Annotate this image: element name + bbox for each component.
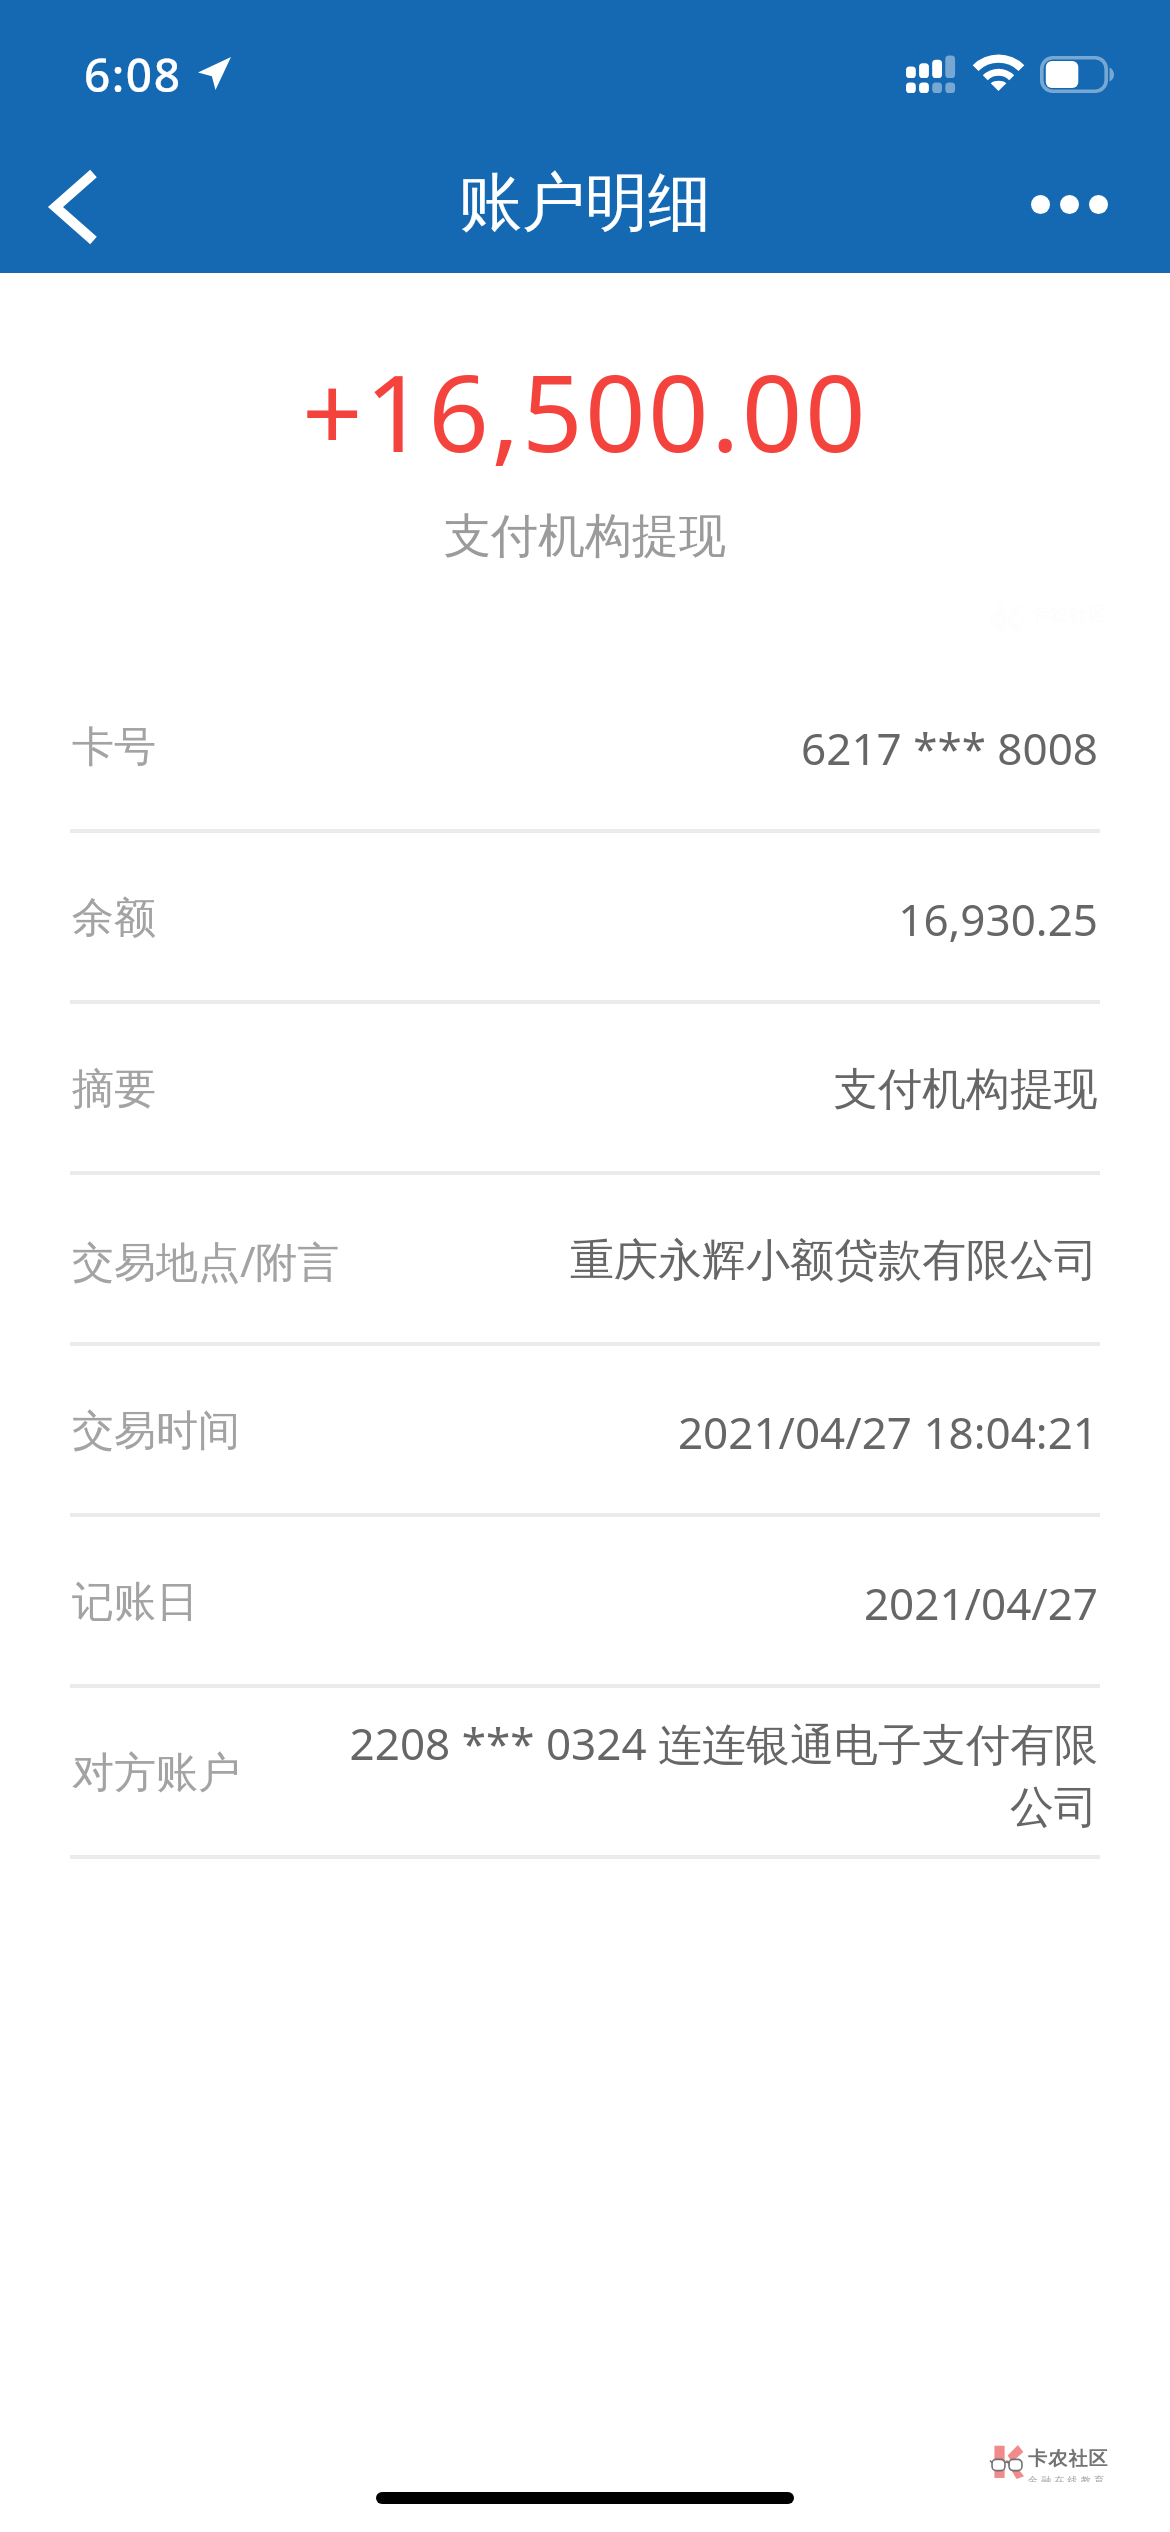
staticText: 记账日 <box>72 1576 198 1629</box>
staticText: 余额 <box>72 892 156 945</box>
staticText: 交易时间 <box>72 1405 240 1458</box>
button[interactable]: Back <box>0 125 145 273</box>
button[interactable]: 卡号 <box>0 662 1170 833</box>
staticText: 2021/04/27 18:04:21 <box>340 1402 1098 1462</box>
staticText: +16,500.00 <box>0 339 1170 483</box>
staticText: 2021/04/27 <box>298 1573 1098 1633</box>
button[interactable]: 记账日 <box>0 1517 1170 1688</box>
staticText: 摘要 <box>72 1063 156 1116</box>
staticText: 对方账户 <box>72 1747 240 1800</box>
staticText: 卡号 <box>72 721 156 774</box>
staticText: 6217 *** 8008 <box>256 718 1098 778</box>
button[interactable]: More options <box>1020 125 1170 273</box>
staticText: 卡农社区 <box>1028 2447 1109 2471</box>
staticText: 2208 *** 0324 连连银通电子支付有限公司 <box>340 1713 1098 1835</box>
button[interactable]: 余额 <box>0 833 1170 1004</box>
staticText: 支付机构提现 <box>0 507 1170 566</box>
staticText: 重庆永辉小额贷款有限公司 <box>440 1233 1098 1288</box>
button[interactable]: 交易地点/附言 <box>0 1175 1170 1346</box>
staticText: 6:08 <box>84 43 182 106</box>
staticText: 账户明细 <box>459 163 711 242</box>
staticText: 金融在线教育 <box>1028 2474 1108 2482</box>
button[interactable]: 对方账户 <box>0 1688 1170 1859</box>
button[interactable]: 摘要 <box>0 1004 1170 1175</box>
button[interactable]: 交易时间 <box>0 1346 1170 1517</box>
staticText: 交易地点/附言 <box>72 1232 340 1289</box>
staticText: 支付机构提现 <box>256 1062 1098 1117</box>
staticText: 16,930.25 <box>256 889 1098 949</box>
